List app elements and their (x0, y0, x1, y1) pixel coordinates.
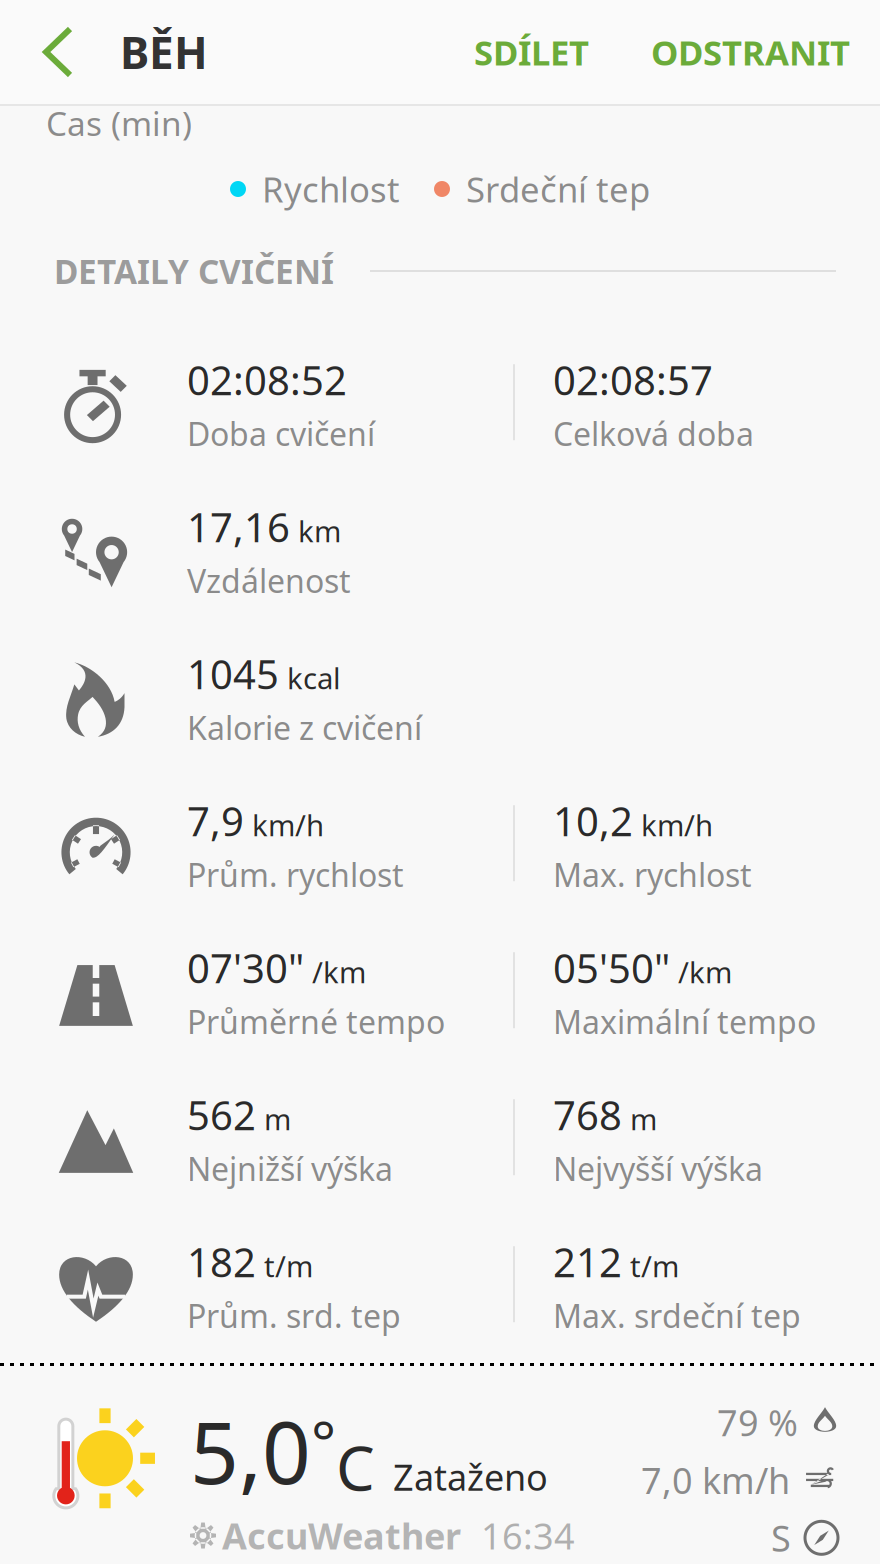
staticText: 7,9 (187, 794, 244, 847)
staticText: 79 % (717, 1398, 798, 1446)
staticText: Rychlost (262, 166, 400, 212)
staticText: t/m (256, 1246, 313, 1285)
staticText: 212 (553, 1235, 622, 1288)
staticText: DETAILY CVIČENÍ (54, 249, 334, 293)
staticText: Zataženo (393, 1453, 548, 1501)
staticText: BĚH (120, 23, 208, 81)
button[interactable]: ODSTRANIT (620, 0, 880, 104)
button[interactable]: SDÍLET (454, 0, 620, 104)
staticText: ° (311, 1402, 336, 1480)
staticText: m (622, 1099, 657, 1138)
staticText: 768 (553, 1088, 622, 1141)
staticText: Max. srdeční tep (553, 1294, 801, 1337)
staticText: km/h (244, 805, 324, 844)
staticText: C (336, 1426, 375, 1508)
staticText: SDÍLET (474, 29, 589, 75)
staticText: Nejnižší výška (187, 1147, 393, 1190)
staticText: 5,0 (190, 1394, 311, 1508)
staticText: 10,2 (553, 794, 633, 847)
staticText: Maximální tempo (553, 1000, 816, 1043)
staticText: Nejvyšší výška (553, 1147, 763, 1190)
staticText: 562 (187, 1088, 256, 1141)
staticText: 182 (187, 1235, 256, 1288)
staticText: km/h (633, 805, 713, 844)
staticText: Max. rychlost (553, 853, 752, 896)
staticText: m (256, 1099, 291, 1138)
staticText: t/m (622, 1246, 679, 1285)
staticText: Kalorie z cvičení (187, 706, 422, 749)
staticText: Cas (min) (46, 101, 192, 145)
staticText: /km (670, 952, 732, 991)
staticText: 05'50" (553, 941, 670, 994)
staticText: Celková doba (553, 412, 754, 455)
staticText: 16:34 (481, 1512, 575, 1559)
staticText: 7,0 km/h (641, 1456, 790, 1504)
staticText: kcal (279, 658, 341, 697)
staticText: km (290, 511, 341, 550)
staticText: Doba cvičení (187, 412, 375, 455)
staticText: 02:08:52 (187, 353, 347, 406)
staticText: Vzdálenost (187, 559, 351, 602)
staticText: AccuWeather (222, 1512, 461, 1559)
staticText: Prům. srd. tep (187, 1294, 401, 1337)
staticText: S (771, 1514, 791, 1562)
staticText: ODSTRANIT (651, 29, 850, 75)
staticText: Srdeční tep (466, 166, 650, 212)
button[interactable]: Back (0, 0, 120, 104)
staticText: 1045 (187, 647, 279, 700)
staticText: 07'30" (187, 941, 304, 994)
staticText: 17,16 (187, 500, 290, 553)
staticText: Průměrné tempo (187, 1000, 445, 1043)
staticText: 02:08:57 (553, 353, 713, 406)
staticText: Prům. rychlost (187, 853, 404, 896)
staticText: /km (304, 952, 366, 991)
